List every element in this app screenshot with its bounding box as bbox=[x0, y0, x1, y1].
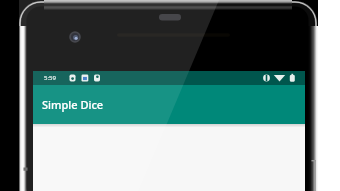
staticText: Simple Dice bbox=[42, 97, 104, 112]
staticText: 5:59 bbox=[44, 74, 56, 82]
button[interactable]: Simple Dice bbox=[33, 85, 305, 124]
